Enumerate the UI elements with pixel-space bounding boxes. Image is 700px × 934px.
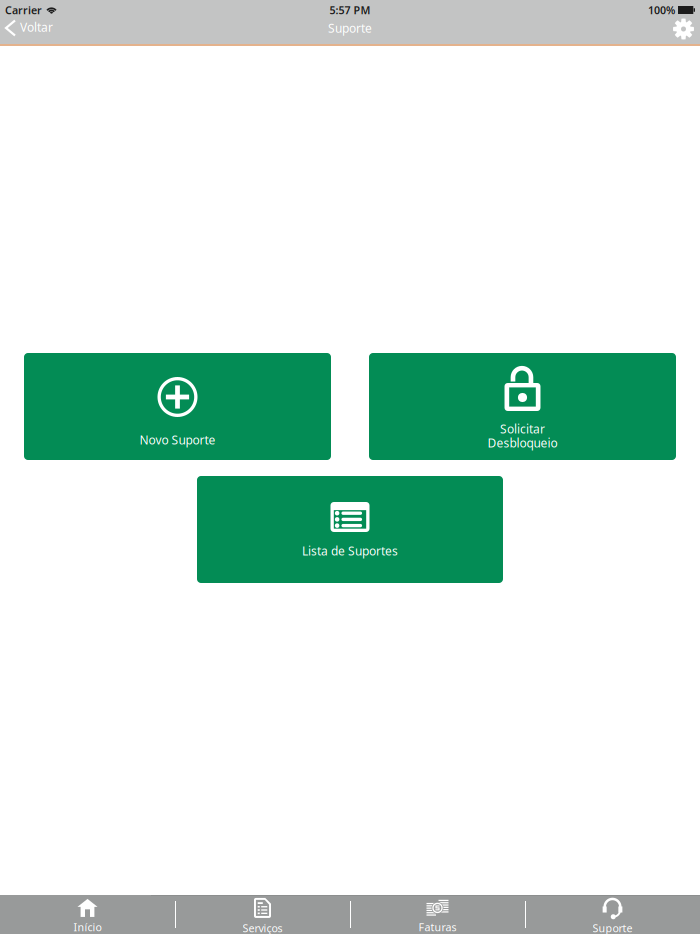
- button[interactable]: Início: [0, 895, 175, 934]
- button[interactable]: Voltar: [0, 16, 63, 40]
- staticText: Suporte: [592, 921, 632, 934]
- staticText: 5:57 PM: [329, 3, 370, 17]
- button[interactable]: Lista de Suportes: [197, 476, 503, 583]
- staticText: Lista de Suportes: [302, 543, 398, 559]
- staticText: Serviços: [242, 921, 282, 934]
- staticText: Novo Suporte: [139, 432, 215, 448]
- button[interactable]: Faturas: [350, 895, 525, 934]
- staticText: Solicitar: [500, 421, 545, 437]
- staticText: Início: [73, 920, 101, 934]
- staticText: Suporte: [328, 20, 372, 36]
- staticText: Voltar: [20, 19, 53, 35]
- button[interactable]: Novo Suporte: [24, 353, 331, 460]
- staticText: 100%: [648, 3, 675, 17]
- button[interactable]: Suporte: [525, 895, 700, 934]
- button[interactable]: Settings: [667, 17, 700, 41]
- staticText: Desbloqueio: [487, 435, 557, 451]
- button[interactable]: Serviços: [175, 895, 350, 934]
- staticText: Carrier: [5, 3, 42, 17]
- staticText: Faturas: [418, 920, 456, 934]
- button[interactable]: Solicitar: [369, 353, 676, 460]
